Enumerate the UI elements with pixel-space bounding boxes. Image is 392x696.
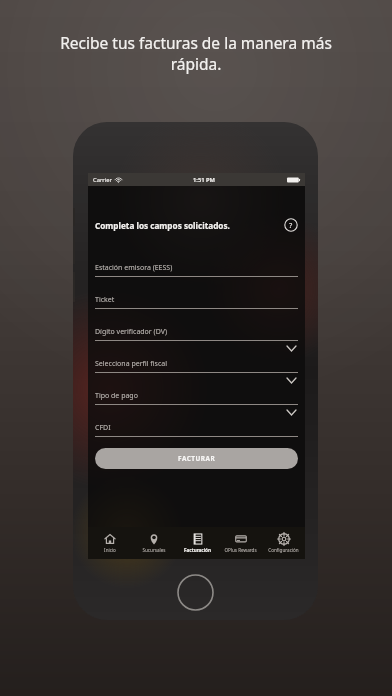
- staticText: Inicio: [104, 547, 116, 553]
- staticText: FACTURAR: [178, 454, 216, 463]
- staticText: Configuración: [268, 547, 299, 553]
- staticText: OPlus Rewards: [224, 547, 257, 553]
- button[interactable]: Tipo de pago: [95, 374, 298, 406]
- staticText: Ticket: [95, 295, 115, 305]
- button[interactable]: CFDI: [95, 406, 298, 438]
- button[interactable]: Sucursales: [132, 527, 176, 559]
- staticText: Estación emisora (EESS): [95, 263, 173, 273]
- button[interactable]: Ticket: [95, 278, 298, 310]
- button[interactable]: Inicio: [88, 527, 132, 559]
- staticText: Facturación: [184, 547, 211, 553]
- button[interactable]: Estación emisora (EESS): [95, 246, 298, 278]
- staticText: ?: [289, 220, 293, 230]
- staticText: CFDI: [95, 423, 111, 433]
- button[interactable]: Dígito verificador (DV): [95, 310, 298, 342]
- staticText: Recibe tus facturas de la manera más ráp…: [60, 32, 332, 75]
- button[interactable]: Selecciona perfil fiscal: [95, 342, 298, 374]
- button[interactable]: Configuración: [262, 527, 305, 559]
- staticText: Tipo de pago: [95, 391, 138, 401]
- staticText: Dígito verificador (DV): [95, 327, 168, 337]
- button[interactable]: Ayuda: [284, 218, 298, 232]
- staticText: Selecciona perfil fiscal: [95, 359, 168, 369]
- staticText: Completa los campos solicitados.: [95, 220, 230, 231]
- staticText: Carrier: [93, 176, 112, 184]
- button[interactable]: OPlus Rewards: [219, 527, 262, 559]
- staticText: Sucursales: [142, 547, 166, 553]
- button[interactable]: Facturación: [176, 527, 219, 559]
- button[interactable]: FACTURAR: [95, 448, 298, 469]
- staticText: 1:51 PM: [193, 176, 216, 184]
